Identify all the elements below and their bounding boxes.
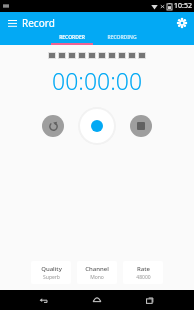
button[interactable]: RECORDING xyxy=(97,33,147,45)
staticText: 48000 xyxy=(136,274,151,281)
button[interactable]: Restart recording xyxy=(42,115,64,137)
button[interactable]: Home xyxy=(87,290,107,310)
staticText: RECORDING xyxy=(107,34,137,41)
button[interactable]: Stop recording xyxy=(130,115,152,137)
button[interactable]: Start recording xyxy=(78,107,116,145)
staticText: Superb xyxy=(43,274,60,281)
staticText: Mono xyxy=(90,274,104,281)
button[interactable]: Rate xyxy=(123,261,163,284)
button[interactable]: Back xyxy=(34,290,54,310)
button[interactable]: Settings xyxy=(174,15,190,31)
staticText: RECORDER xyxy=(59,34,85,41)
button[interactable]: Open navigation menu xyxy=(4,15,20,31)
button[interactable]: Channel xyxy=(77,261,117,284)
staticText: Rate xyxy=(137,265,150,273)
staticText: Quality xyxy=(41,265,62,273)
button[interactable]: Quality xyxy=(31,261,71,284)
button[interactable]: RECORDER xyxy=(47,33,97,45)
staticText: 00:00:00 xyxy=(52,65,143,96)
button[interactable]: Recent apps xyxy=(140,290,160,310)
staticText: Channel xyxy=(85,265,109,273)
staticText: Record xyxy=(22,16,55,30)
staticText: 10:52 xyxy=(174,1,192,11)
